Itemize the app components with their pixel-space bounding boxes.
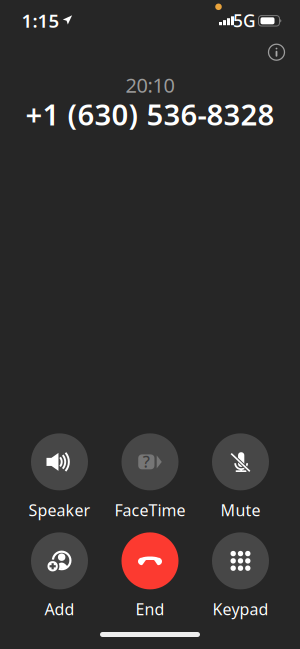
button[interactable]: Call Info [259, 35, 293, 69]
staticText: Speaker [28, 499, 90, 521]
staticText: FaceTime [114, 499, 185, 521]
staticText: Mute [220, 499, 260, 521]
button[interactable]: End [106, 535, 194, 617]
staticText: Add [44, 598, 74, 620]
staticText: +1 (630) 536-8328 [25, 94, 274, 133]
staticText: Keypad [212, 598, 268, 620]
button[interactable]: Keypad [196, 535, 284, 617]
staticText: ? [143, 451, 150, 472]
button[interactable]: Speaker [15, 436, 103, 518]
staticText: End [135, 598, 164, 620]
button[interactable]: ? [106, 436, 194, 518]
button[interactable]: Mute [196, 436, 284, 518]
staticText: 5G [233, 9, 256, 32]
staticText: 1:15 [21, 8, 59, 33]
button[interactable]: Add [15, 535, 103, 617]
staticText: 20:10 [125, 72, 174, 98]
